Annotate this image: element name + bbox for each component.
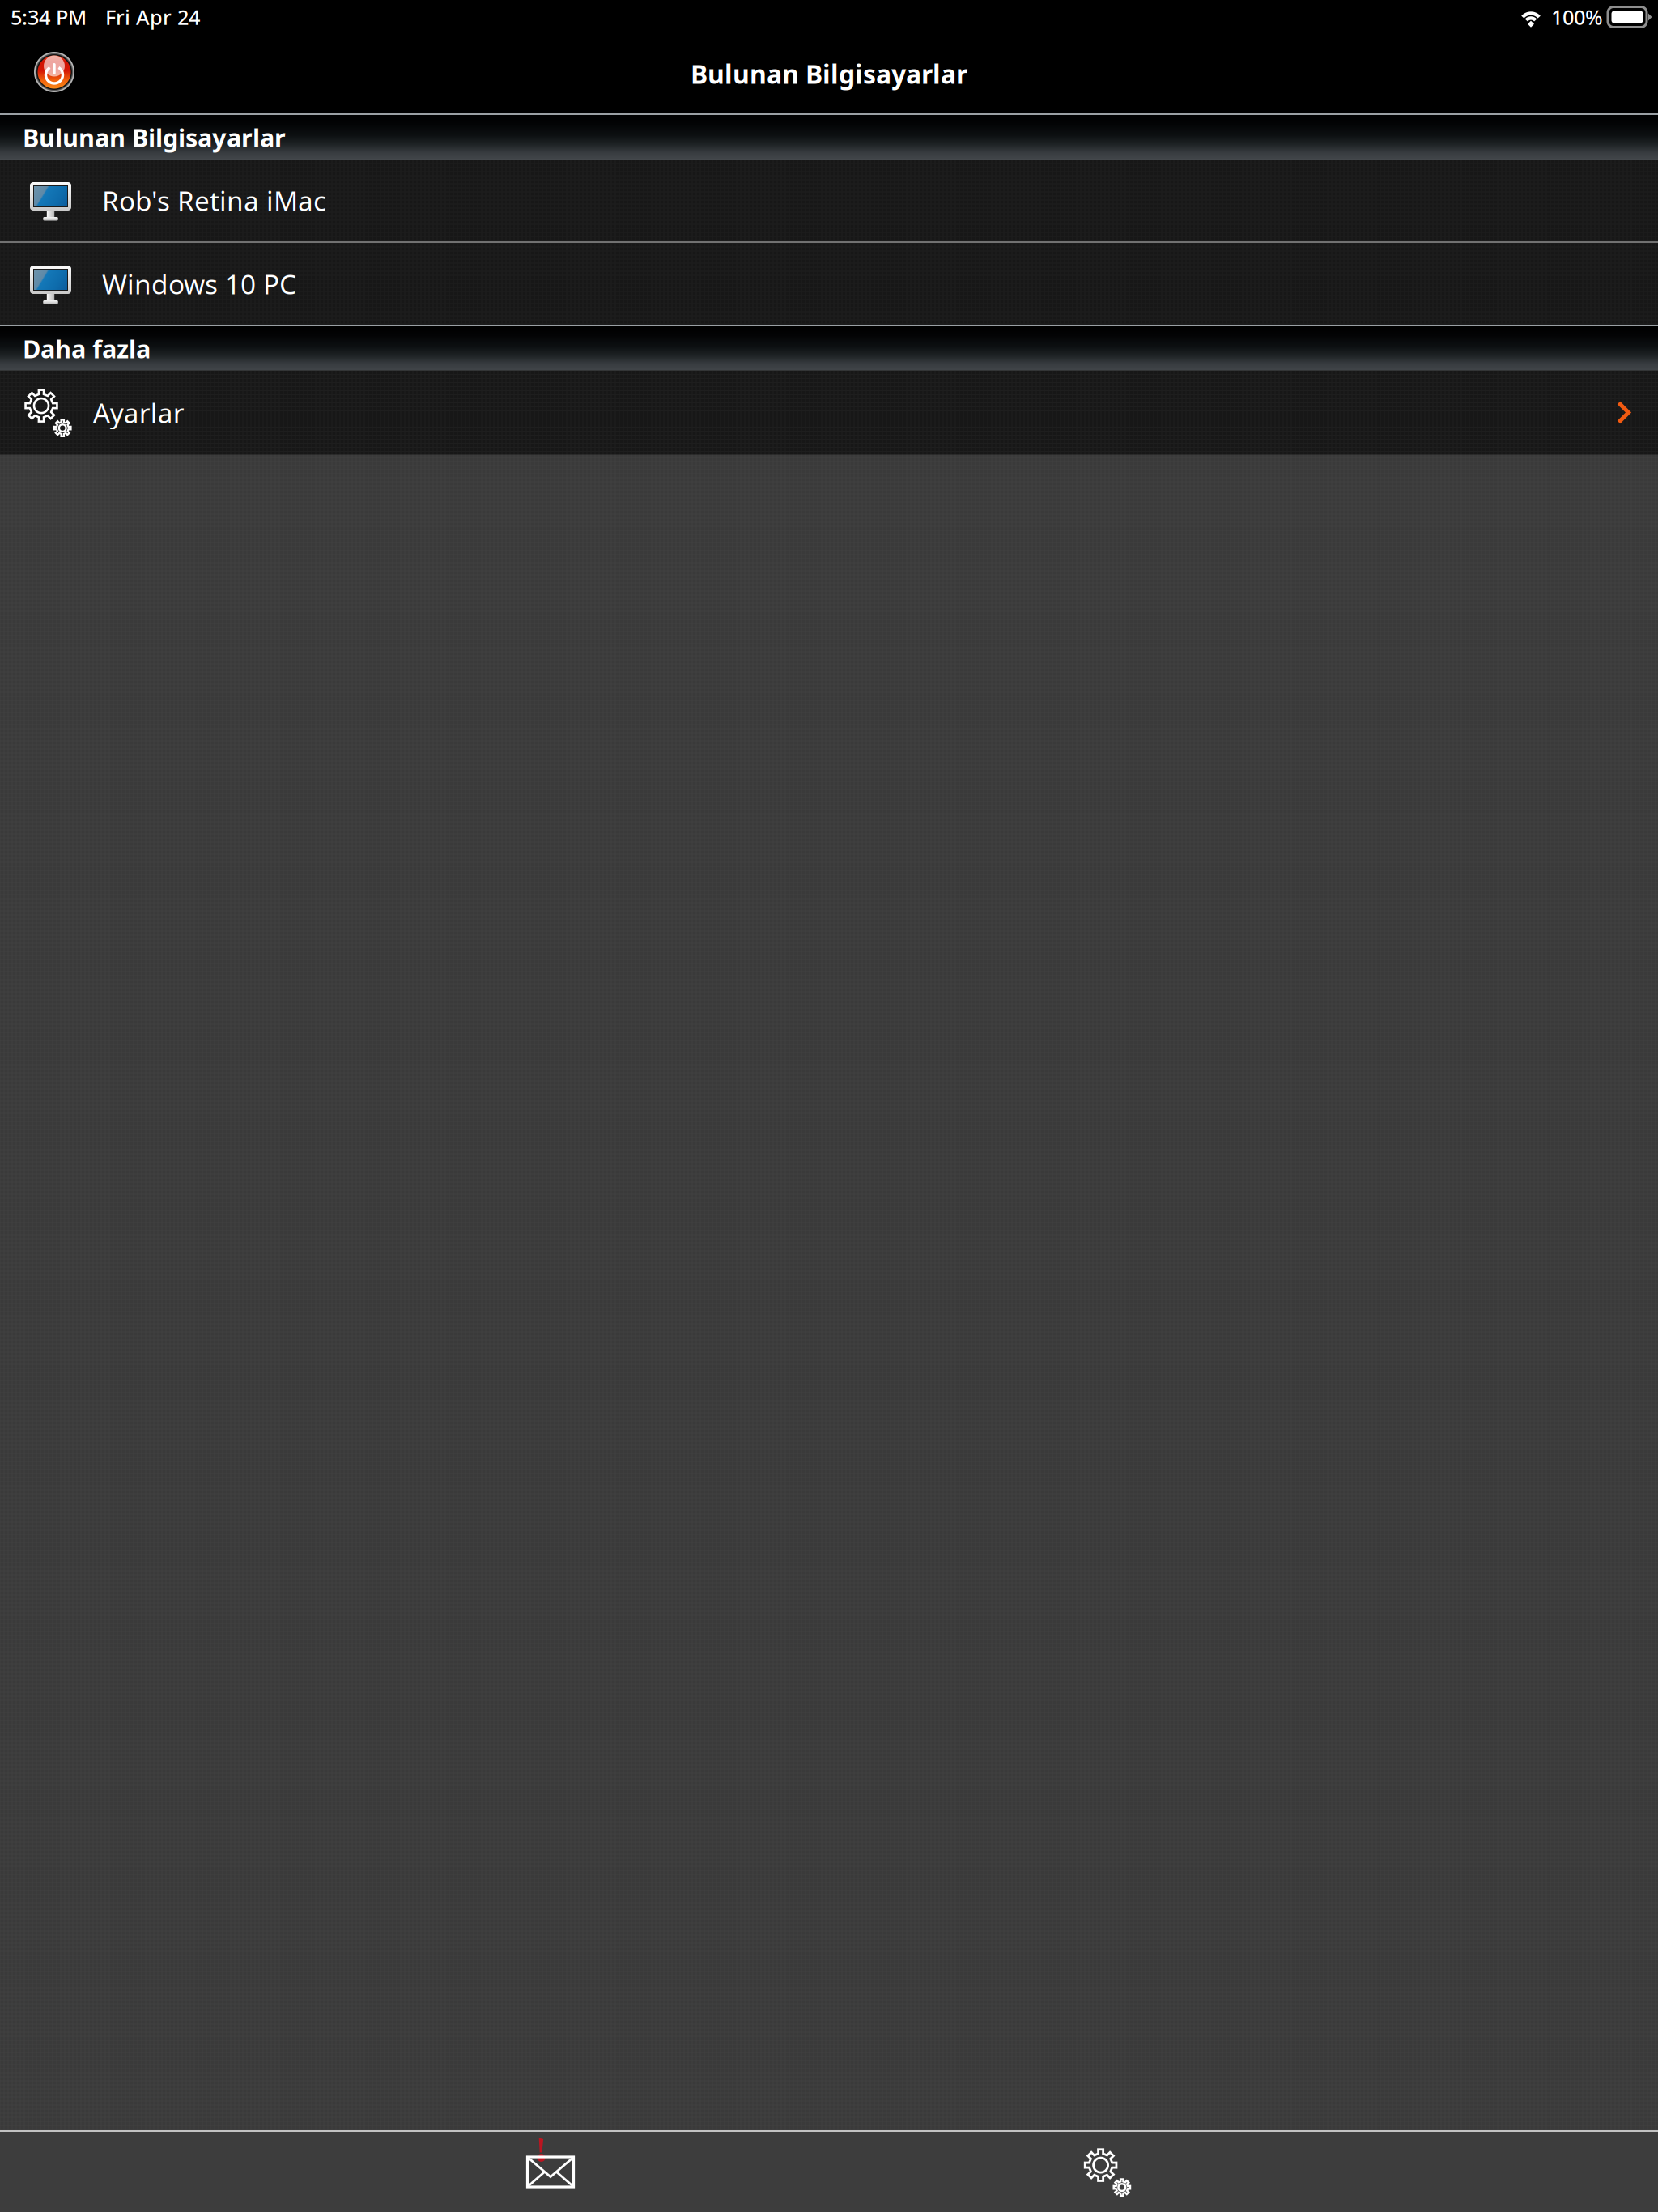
staticText: Bulunan Bilgisayarlar [23,121,286,154]
staticText: Bulunan Bilgisayarlar [691,57,967,91]
staticText: Fri Apr 24 [105,3,200,31]
button[interactable]: Ayarlar [0,371,1658,454]
button[interactable]: Power [0,45,75,103]
staticText: Daha fazla [23,332,151,365]
button[interactable]: Windows 10 PC [0,243,1658,325]
staticText: 5:34 PM [11,3,87,31]
staticText: Ayarlar [93,395,184,430]
staticText: Rob's Retina iMac [102,182,326,218]
staticText: Windows 10 PC [102,266,296,302]
button[interactable]: Mail [453,2132,648,2212]
staticText: 100% [1551,3,1603,31]
button[interactable]: Settings [1010,2132,1205,2212]
button[interactable]: Rob's Retina iMac [0,160,1658,241]
